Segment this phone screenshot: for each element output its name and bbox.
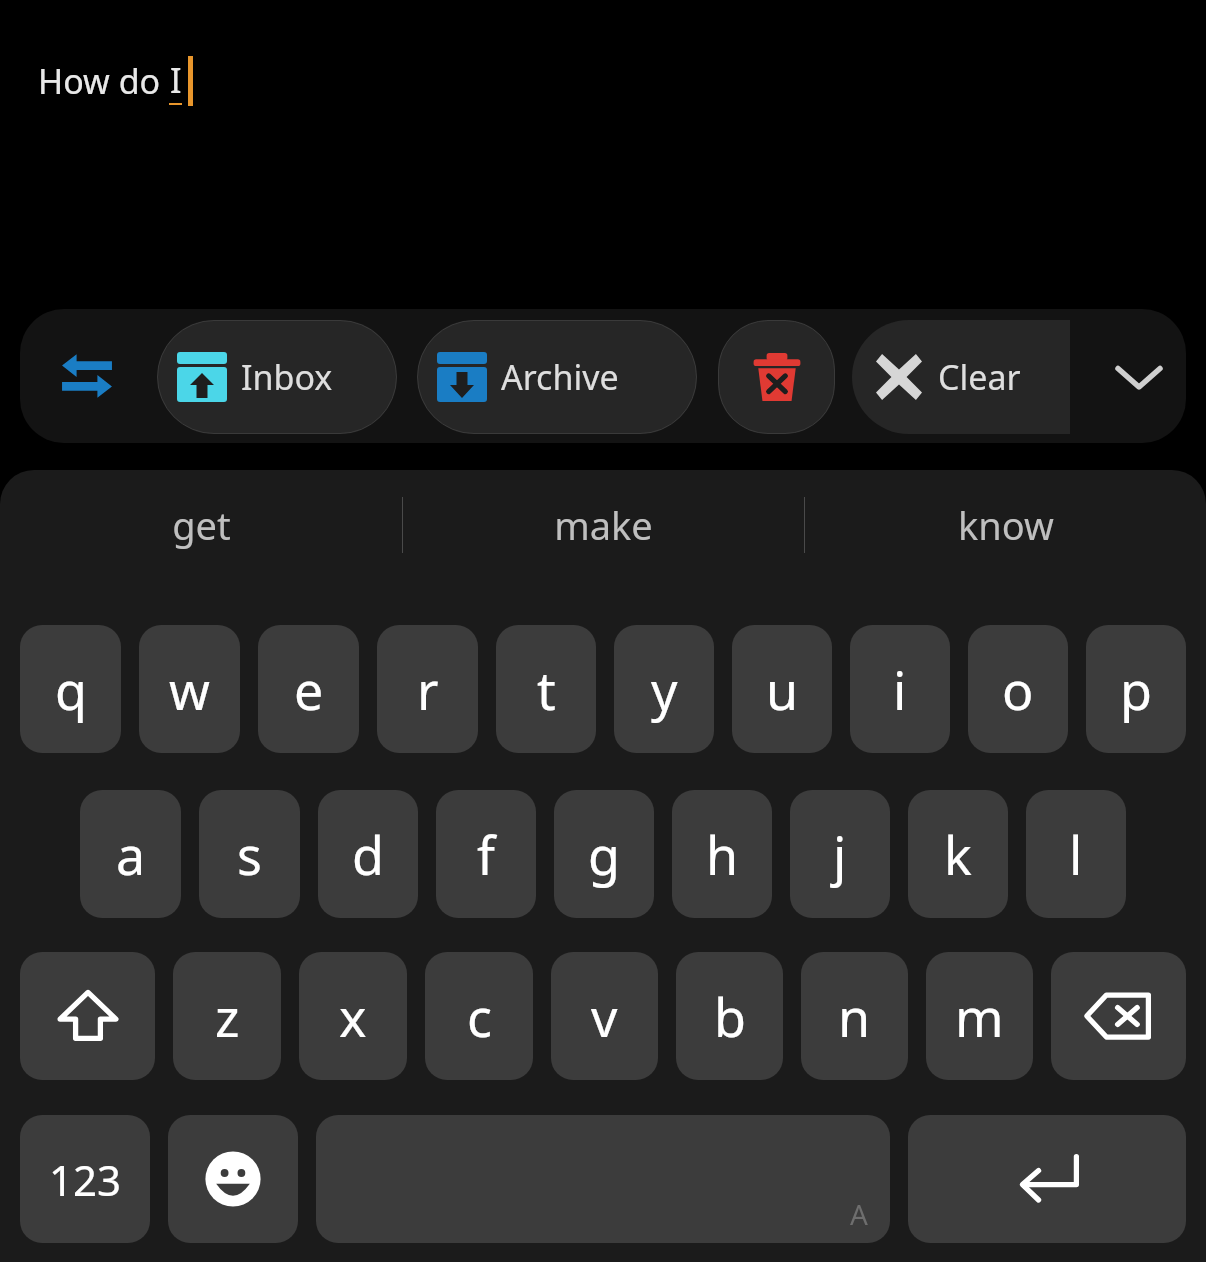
button[interactable]: z	[173, 952, 281, 1080]
staticText: s	[237, 819, 262, 890]
button[interactable]: d	[318, 790, 418, 918]
staticText: p	[1120, 654, 1152, 725]
staticText: make	[554, 499, 653, 551]
staticText: f	[477, 819, 495, 890]
button[interactable]: Archive	[417, 320, 697, 434]
button[interactable]: w	[139, 625, 240, 753]
button[interactable]: m	[926, 952, 1033, 1080]
staticText: c	[467, 981, 492, 1052]
button[interactable]: u	[732, 625, 832, 753]
button[interactable]: p	[1086, 625, 1186, 753]
button[interactable]: Delete	[718, 320, 835, 434]
button[interactable]: f	[436, 790, 536, 918]
button[interactable]: i	[850, 625, 950, 753]
button[interactable]: e	[258, 625, 359, 753]
button[interactable]: v	[551, 952, 658, 1080]
button[interactable]: j	[790, 790, 890, 918]
button[interactable]: Enter	[908, 1115, 1186, 1243]
button[interactable]: k	[908, 790, 1008, 918]
button[interactable]: Swap	[44, 333, 130, 419]
staticText: z	[215, 981, 240, 1052]
button[interactable]: Shift	[20, 952, 155, 1080]
button[interactable]: Emoji	[168, 1115, 298, 1243]
staticText: Inbox	[241, 354, 333, 400]
button[interactable]: Expand	[1082, 320, 1186, 434]
staticText: Clear	[938, 354, 1021, 400]
staticText: d	[352, 819, 384, 890]
staticText: l	[1069, 819, 1083, 890]
staticText: get	[172, 499, 231, 551]
staticText: t	[537, 654, 556, 725]
staticText: A	[850, 1195, 868, 1233]
button[interactable]: 123	[20, 1115, 150, 1243]
button[interactable]: r	[377, 625, 478, 753]
staticText: j	[833, 819, 847, 890]
button[interactable]: q	[20, 625, 121, 753]
button[interactable]: Space	[316, 1115, 890, 1243]
button[interactable]: y	[614, 625, 714, 753]
button[interactable]: c	[425, 952, 533, 1080]
staticText: I	[170, 57, 182, 103]
button[interactable]: x	[299, 952, 407, 1080]
button[interactable]: t	[496, 625, 596, 753]
staticText: m	[955, 981, 1004, 1052]
staticText: 123	[49, 1151, 122, 1208]
button[interactable]: get	[0, 470, 402, 580]
button[interactable]: b	[676, 952, 783, 1080]
staticText: r	[417, 654, 439, 725]
staticText: x	[339, 981, 367, 1052]
staticText: y	[651, 654, 678, 725]
staticText: How do	[38, 58, 169, 104]
staticText: know	[958, 499, 1054, 551]
button[interactable]: g	[554, 790, 654, 918]
staticText: a	[116, 819, 146, 890]
staticText: k	[944, 819, 972, 890]
staticText: i	[893, 654, 907, 725]
staticText: o	[1002, 654, 1034, 725]
button[interactable]: o	[968, 625, 1068, 753]
staticText: v	[591, 981, 618, 1052]
staticText: u	[766, 654, 799, 725]
button[interactable]: h	[672, 790, 772, 918]
staticText: w	[169, 654, 210, 725]
staticText: e	[294, 654, 324, 725]
button[interactable]: make	[403, 470, 804, 580]
button[interactable]: l	[1026, 790, 1126, 918]
button[interactable]: know	[805, 470, 1206, 580]
button[interactable]: Clear	[852, 320, 1070, 434]
staticText: Archive	[501, 354, 619, 400]
button[interactable]: n	[801, 952, 908, 1080]
button[interactable]: s	[199, 790, 300, 918]
staticText: n	[838, 981, 871, 1052]
staticText: g	[588, 819, 620, 890]
button[interactable]: a	[80, 790, 181, 918]
button[interactable]: Inbox	[157, 320, 397, 434]
staticText: h	[706, 819, 739, 890]
button[interactable]: Backspace	[1051, 952, 1186, 1080]
staticText: b	[714, 981, 746, 1052]
staticText: q	[55, 654, 87, 725]
